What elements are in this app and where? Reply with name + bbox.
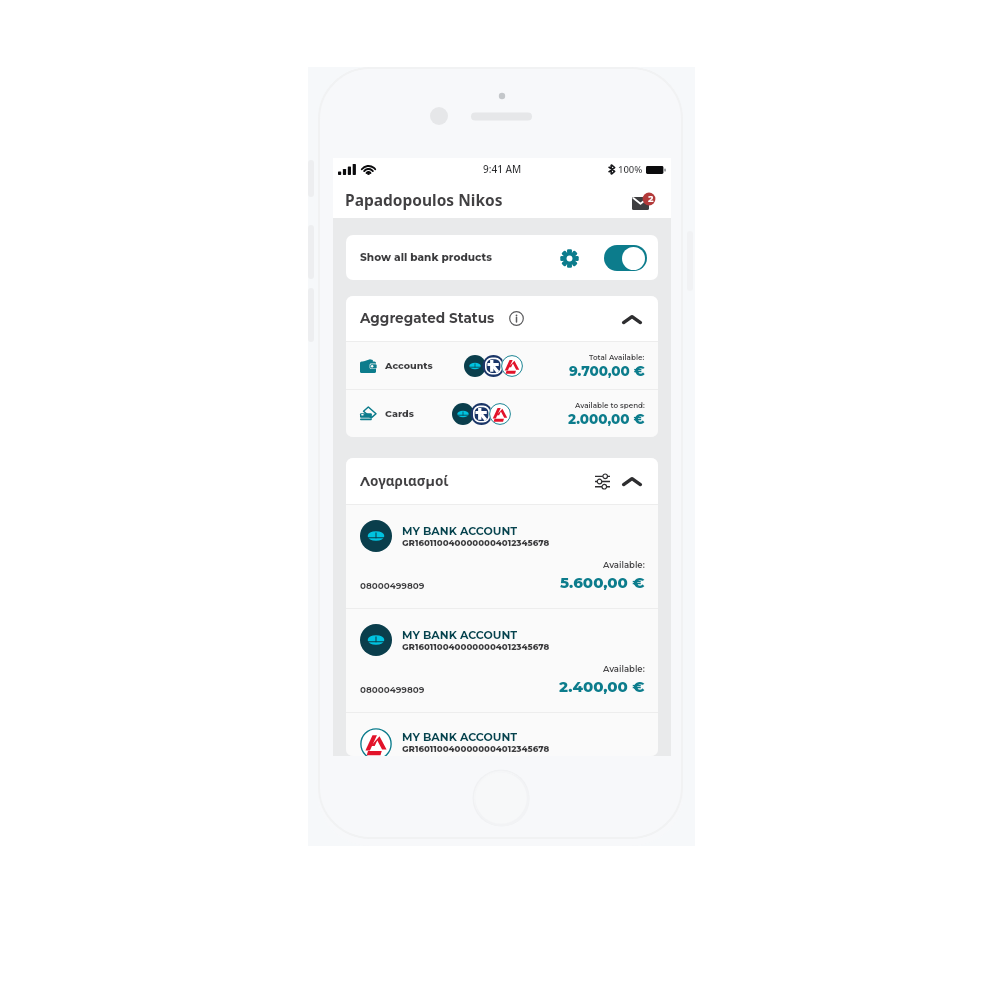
staticText: Available: bbox=[603, 560, 645, 570]
button[interactable]: MY BANK ACCOUNT bbox=[346, 609, 658, 712]
button[interactable]: Messages bbox=[632, 186, 658, 212]
button[interactable]: Accounts bbox=[346, 342, 658, 389]
staticText: 08000499809 bbox=[360, 684, 425, 695]
staticText: Available: bbox=[603, 664, 645, 674]
staticText: Available to spend: bbox=[575, 401, 645, 410]
staticText: GR1601100400000004012345678 bbox=[402, 744, 550, 754]
staticText: Cards bbox=[385, 408, 414, 420]
button[interactable]: Settings bbox=[556, 245, 582, 271]
button[interactable]: Collapse accounts bbox=[619, 468, 645, 494]
button[interactable]: MY BANK ACCOUNT bbox=[346, 713, 658, 756]
button[interactable]: Toggle show all bank products bbox=[604, 245, 647, 271]
button[interactable]: Filter accounts bbox=[591, 470, 613, 492]
staticText: 9.700,00 € bbox=[569, 363, 645, 379]
staticText: 2 bbox=[648, 192, 654, 205]
staticText: Accounts bbox=[385, 360, 433, 372]
staticText: MY BANK ACCOUNT bbox=[402, 628, 518, 641]
button[interactable]: MY BANK ACCOUNT bbox=[346, 505, 658, 608]
staticText: Total Available: bbox=[589, 353, 645, 362]
staticText: Aggregated Status bbox=[360, 310, 495, 327]
staticText: MY BANK ACCOUNT bbox=[402, 730, 518, 743]
staticText: Show all bank products bbox=[360, 251, 492, 264]
button[interactable]: Cards bbox=[346, 390, 658, 437]
staticText: 9:41 AM bbox=[483, 162, 522, 176]
button[interactable]: Collapse aggregated status bbox=[619, 306, 645, 332]
staticText: 08000499809 bbox=[360, 580, 425, 591]
staticText: Λογαριασμοί bbox=[360, 472, 449, 490]
button[interactable]: Show all bank products bbox=[346, 235, 658, 280]
staticText: GR1601100400000004012345678 bbox=[402, 642, 550, 652]
staticText: MY BANK ACCOUNT bbox=[402, 524, 518, 537]
staticText: Papadopoulos Nikos bbox=[345, 189, 503, 210]
staticText: 2.400,00 € bbox=[559, 677, 645, 695]
button[interactable]: Λογαριασμοί bbox=[346, 458, 658, 504]
button[interactable]: Aggregated Status bbox=[346, 296, 658, 341]
staticText: 2.000,00 € bbox=[568, 411, 645, 427]
staticText: 5.600,00 € bbox=[560, 573, 645, 591]
staticText: GR1601100400000004012345678 bbox=[402, 538, 550, 548]
staticText: 100% bbox=[618, 163, 643, 176]
